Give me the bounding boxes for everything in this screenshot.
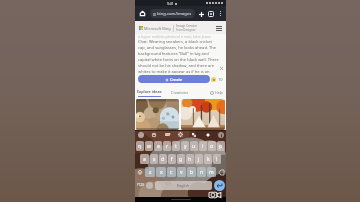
button[interactable]: n <box>197 167 206 177</box>
staticText: cap, and sunglasses, he looks ahead. The <box>138 45 217 51</box>
button[interactable]: Create <box>138 75 210 83</box>
button[interactable]: w <box>145 141 153 151</box>
staticText: m <box>209 169 214 176</box>
staticText: GIF <box>165 133 171 137</box>
staticText: f <box>171 156 173 163</box>
staticText: v <box>180 169 183 176</box>
staticText: z <box>149 169 152 176</box>
button[interactable]: Clipboard <box>204 131 211 138</box>
staticText: w <box>147 143 151 150</box>
staticText: j <box>198 156 200 163</box>
staticText: English <box>177 183 190 188</box>
staticText: 9:41 <box>167 1 174 6</box>
button[interactable]: Creations <box>170 88 189 97</box>
button[interactable]: bing.com/images <box>150 9 195 18</box>
staticText: from Designer <box>176 28 196 32</box>
staticText: k <box>207 156 210 163</box>
button[interactable]: Emoji <box>146 182 153 189</box>
button[interactable]: f <box>168 154 176 164</box>
button[interactable]: English <box>155 181 212 190</box>
button[interactable]: i <box>199 141 207 151</box>
staticText: a hyper realistic photo of a man, blue j… <box>138 34 211 39</box>
button[interactable]: Voice input <box>217 131 224 138</box>
button[interactable]: l <box>213 154 221 164</box>
button[interactable]: New tab <box>197 10 205 18</box>
staticText: x <box>160 169 163 176</box>
staticText: n <box>200 169 204 176</box>
button[interactable]: Translate <box>190 131 197 138</box>
staticText: l <box>216 156 218 163</box>
button[interactable]: y <box>181 141 189 151</box>
button[interactable]: g <box>177 154 185 164</box>
staticText: p <box>219 143 223 150</box>
staticText: d <box>161 156 165 163</box>
staticText: should not be his shadow, and there are <box>138 63 215 69</box>
button[interactable]: h <box>186 154 194 164</box>
button[interactable]: v <box>177 167 186 177</box>
staticText: b <box>190 169 194 176</box>
staticText: Help <box>215 90 223 95</box>
staticText: g <box>179 156 183 163</box>
staticText: ?123 <box>137 183 144 187</box>
staticText: bing.com/images <box>157 11 192 17</box>
staticText: whites to make it appear as if he is on <box>138 69 210 73</box>
button[interactable]: Explore idea: cave <box>136 99 179 130</box>
button[interactable]: q <box>136 141 144 151</box>
button[interactable]: Home <box>138 9 147 18</box>
button[interactable]: More options <box>217 10 224 17</box>
button[interactable]: j <box>195 154 203 164</box>
button[interactable]: Clear prompt <box>219 66 224 71</box>
button[interactable]: b <box>187 167 196 177</box>
button[interactable]: c <box>167 167 176 177</box>
staticText: i <box>202 143 204 150</box>
staticText: Explore ideas <box>137 89 162 94</box>
button[interactable]: Shift <box>136 167 144 177</box>
staticText: s <box>153 156 156 163</box>
button[interactable]: z <box>145 167 155 177</box>
button[interactable]: e <box>154 141 162 151</box>
button[interactable]: d <box>159 154 167 164</box>
button[interactable]: p <box>217 141 225 151</box>
button[interactable]: m <box>207 167 216 177</box>
staticText: Chat: Wearing sneakers, a black cricket <box>138 39 212 45</box>
staticText: u <box>192 143 196 150</box>
staticText: a <box>143 156 146 163</box>
button[interactable]: Settings <box>177 131 184 138</box>
staticText: Create <box>170 77 183 82</box>
button[interactable]: x <box>156 167 166 177</box>
staticText: y <box>184 143 187 150</box>
button[interactable]: Stickers <box>150 131 157 138</box>
button[interactable]: r <box>163 141 171 151</box>
staticText: background features “Bull” in big and <box>138 51 209 57</box>
button[interactable]: Enter <box>214 180 225 191</box>
staticText: o <box>210 143 214 150</box>
staticText: r <box>166 143 169 150</box>
button[interactable]: Help <box>210 90 223 95</box>
button[interactable]: Google search <box>137 131 144 138</box>
button[interactable]: Menu <box>215 24 223 32</box>
button[interactable]: k <box>204 154 212 164</box>
staticText: Creations <box>171 90 188 95</box>
button[interactable]: Tabs <box>207 10 215 18</box>
staticText: capital white fonts on the black wall. T… <box>138 57 219 63</box>
staticText: e <box>157 143 160 150</box>
staticText: Image Creator <box>176 24 198 28</box>
button[interactable]: Explore idea: autumn camp <box>181 99 225 130</box>
staticText: 10 <box>218 77 223 82</box>
button[interactable]: s <box>150 154 158 164</box>
button[interactable]: GIF <box>164 131 171 138</box>
staticText: h <box>188 156 192 163</box>
button[interactable]: a <box>140 154 149 164</box>
staticText: c <box>170 169 173 176</box>
staticText: q <box>138 143 142 150</box>
button[interactable]: Explore ideas <box>136 89 163 97</box>
button[interactable]: o <box>208 141 216 151</box>
staticText: Microsoft Bing <box>144 26 171 31</box>
button[interactable]: t <box>172 141 180 151</box>
staticText: t <box>175 143 177 150</box>
other: Screen recorder <box>209 191 221 199</box>
button[interactable]: Backspace <box>217 167 225 177</box>
button[interactable]: ?123 <box>136 180 144 190</box>
button[interactable]: u <box>190 141 198 151</box>
